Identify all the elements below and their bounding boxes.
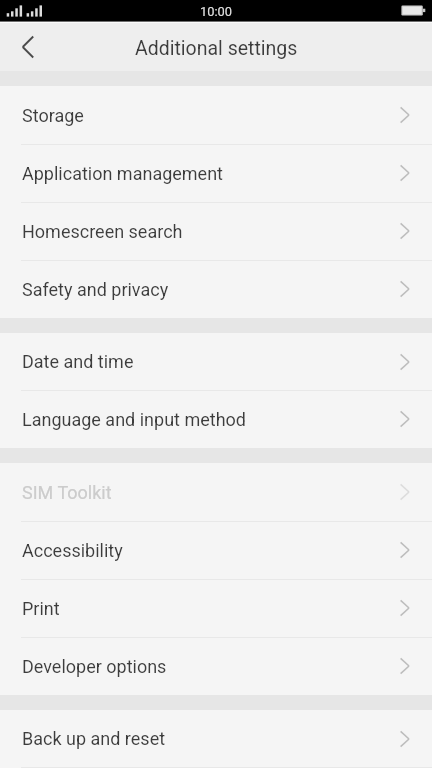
staticText: 10:00 (200, 4, 233, 19)
button[interactable]: Safety and privacy (0, 260, 432, 318)
button[interactable]: Homescreen search (0, 202, 432, 260)
staticText: Homescreen search (22, 221, 183, 242)
button[interactable]: Storage (0, 86, 432, 144)
staticText: Accessibility (22, 540, 123, 561)
staticText: Developer options (22, 656, 167, 677)
button[interactable]: SIM Toolkit (0, 463, 432, 521)
button[interactable]: Back up and reset (0, 710, 432, 767)
staticText: Back up and reset (22, 728, 166, 749)
staticText: Application management (22, 163, 223, 184)
button[interactable]: Back (0, 22, 56, 71)
staticText: Language and input method (22, 409, 246, 430)
staticText: Print (22, 598, 60, 619)
button[interactable]: Print (0, 579, 432, 637)
staticText: Storage (22, 105, 84, 126)
staticText: Safety and privacy (22, 279, 169, 300)
button[interactable]: Date and time (0, 333, 432, 390)
staticText: Date and time (22, 351, 134, 372)
button[interactable]: Accessibility (0, 521, 432, 579)
button[interactable]: Developer options (0, 637, 432, 695)
staticText: Additional settings (135, 37, 298, 60)
button[interactable]: Language and input method (0, 390, 432, 448)
button[interactable]: Application management (0, 144, 432, 202)
staticText: SIM Toolkit (22, 482, 112, 503)
